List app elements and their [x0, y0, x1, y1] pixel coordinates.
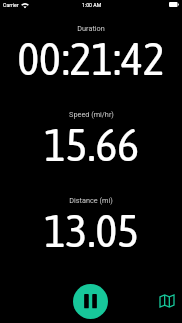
staticText: 13.05: [44, 204, 139, 257]
staticText: 1:00 AM: [82, 2, 102, 8]
staticText: Duration: [77, 24, 105, 33]
staticText: Distance (mi): [69, 196, 113, 205]
button[interactable]: Pause: [73, 284, 108, 319]
staticText: 00:21:42: [17, 32, 165, 85]
staticText: Carrier: [3, 2, 19, 8]
staticText: 15.66: [44, 118, 139, 171]
button[interactable]: Map: [156, 290, 178, 312]
staticText: Speed (mi/hr): [69, 110, 114, 119]
